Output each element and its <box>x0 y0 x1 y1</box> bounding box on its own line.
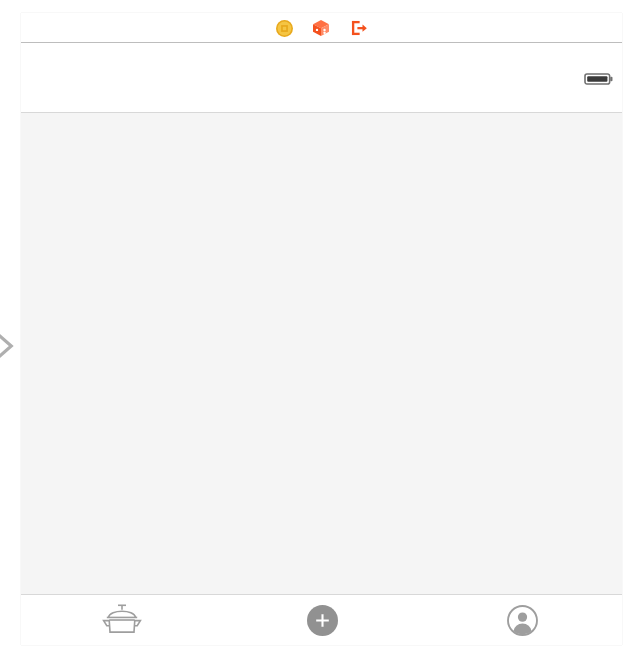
button[interactable]: Recipes <box>21 595 222 645</box>
button[interactable]: Battery <box>585 72 613 86</box>
button[interactable]: Coins <box>271 15 297 41</box>
button[interactable]: Next <box>0 325 17 367</box>
button[interactable]: Profile <box>422 595 622 645</box>
button[interactable]: Add <box>222 595 422 645</box>
button[interactable]: Log out <box>346 15 372 41</box>
button[interactable]: Dice <box>308 15 334 41</box>
